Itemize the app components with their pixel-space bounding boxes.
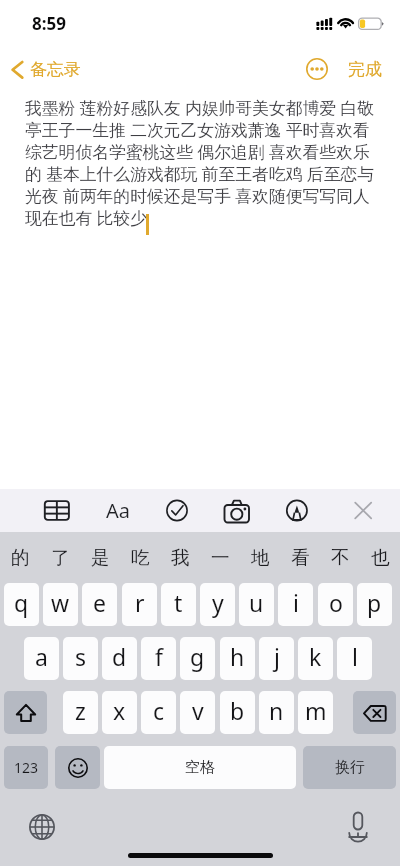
staticText: 我墨粉 莲粉好感队友 内娱帅哥美女都博爱 白敬 亭王子一生推 二次元乙女游戏萧逸… xyxy=(25,97,375,229)
button[interactable]: Backspace xyxy=(353,691,396,734)
button[interactable]: z xyxy=(63,691,98,734)
staticText: 我 xyxy=(171,546,190,569)
button[interactable]: p xyxy=(357,583,392,626)
button[interactable]: 我 xyxy=(160,532,200,582)
staticText: 的 xyxy=(11,546,30,569)
staticText: o xyxy=(329,587,343,618)
staticText: l xyxy=(352,641,358,672)
staticText: j xyxy=(274,641,280,672)
staticText: 备忘录 xyxy=(30,59,81,80)
staticText: 空格 xyxy=(185,758,215,777)
staticText: 也 xyxy=(371,546,390,569)
button[interactable]: x xyxy=(102,691,137,734)
staticText: 看 xyxy=(291,546,310,569)
button[interactable]: Checklist xyxy=(155,489,199,532)
button[interactable]: 123 xyxy=(4,746,48,789)
staticText: g xyxy=(190,641,205,672)
staticText: x xyxy=(113,695,126,726)
button[interactable]: d xyxy=(102,637,137,680)
staticText: 8:59 xyxy=(32,12,66,35)
staticText: 一 xyxy=(211,546,230,569)
staticText: t xyxy=(174,587,183,618)
button[interactable]: u xyxy=(239,583,274,626)
button[interactable]: More options xyxy=(295,47,339,91)
button[interactable]: 不 xyxy=(320,532,360,582)
button[interactable]: 完成 xyxy=(339,47,400,91)
button[interactable]: Switch keyboard xyxy=(24,809,60,845)
button[interactable]: j xyxy=(259,637,294,680)
staticText: p xyxy=(367,587,382,618)
staticText: 123 xyxy=(14,758,39,777)
button[interactable]: 了 xyxy=(40,532,80,582)
staticText: i xyxy=(293,587,299,618)
button[interactable]: Camera xyxy=(215,489,259,532)
staticText: s xyxy=(75,641,87,672)
button[interactable]: a xyxy=(24,637,59,680)
staticText: u xyxy=(249,587,264,618)
button[interactable]: 看 xyxy=(280,532,320,582)
staticText: k xyxy=(309,641,322,672)
button[interactable]: 吃 xyxy=(120,532,160,582)
button[interactable]: 的 xyxy=(0,532,40,582)
staticText: 完成 xyxy=(348,59,382,80)
button[interactable]: Dictation xyxy=(340,809,376,845)
staticText: a xyxy=(35,641,48,672)
button[interactable]: 换行 xyxy=(303,746,396,789)
staticText: n xyxy=(269,695,284,726)
staticText: w xyxy=(51,587,70,618)
button[interactable]: Table xyxy=(35,489,79,532)
button[interactable]: m xyxy=(298,691,333,734)
staticText: b xyxy=(230,695,245,726)
staticText: m xyxy=(305,695,327,726)
staticText: y xyxy=(212,587,224,618)
button[interactable]: Markup xyxy=(275,489,319,532)
button[interactable]: Emoji xyxy=(55,746,100,789)
button[interactable]: 空格 xyxy=(104,746,296,789)
staticText: d xyxy=(112,641,127,672)
button[interactable]: Shift xyxy=(4,691,47,734)
button[interactable]: g xyxy=(180,637,215,680)
staticText: 换行 xyxy=(335,758,365,777)
staticText: h xyxy=(230,641,245,672)
button[interactable]: c xyxy=(141,691,176,734)
button[interactable]: v xyxy=(180,691,215,734)
button[interactable]: 备忘录 xyxy=(0,44,91,91)
button[interactable]: s xyxy=(63,637,98,680)
staticText: e xyxy=(93,587,106,618)
staticText: Aa xyxy=(106,497,130,524)
button[interactable]: e xyxy=(82,583,117,626)
button[interactable]: l xyxy=(337,637,372,680)
button[interactable]: 也 xyxy=(360,532,400,582)
staticText: 是 xyxy=(91,546,110,569)
button[interactable]: n xyxy=(259,691,294,734)
staticText: 不 xyxy=(331,546,350,569)
button[interactable]: Close keyboard xyxy=(341,489,385,532)
button[interactable]: k xyxy=(298,637,333,680)
staticText: v xyxy=(192,695,204,726)
staticText: 吃 xyxy=(131,546,150,569)
button[interactable]: 是 xyxy=(80,532,120,582)
button[interactable]: 一 xyxy=(200,532,240,582)
button[interactable]: r xyxy=(122,583,157,626)
button[interactable]: w xyxy=(43,583,78,626)
staticText: q xyxy=(14,587,29,618)
staticText: r xyxy=(135,587,145,618)
staticText: f xyxy=(155,641,163,672)
button[interactable]: h xyxy=(220,637,255,680)
button[interactable]: y xyxy=(200,583,235,626)
button[interactable]: i xyxy=(278,583,313,626)
staticText: z xyxy=(75,695,86,726)
staticText: 了 xyxy=(51,546,70,569)
button[interactable]: o xyxy=(318,583,353,626)
button[interactable]: t xyxy=(161,583,196,626)
button[interactable]: 地 xyxy=(240,532,280,582)
button[interactable]: b xyxy=(220,691,255,734)
staticText: 地 xyxy=(251,546,270,569)
button[interactable]: q xyxy=(4,583,39,626)
staticText: c xyxy=(153,695,165,726)
button[interactable]: f xyxy=(141,637,176,680)
button[interactable]: Format text xyxy=(97,489,141,532)
